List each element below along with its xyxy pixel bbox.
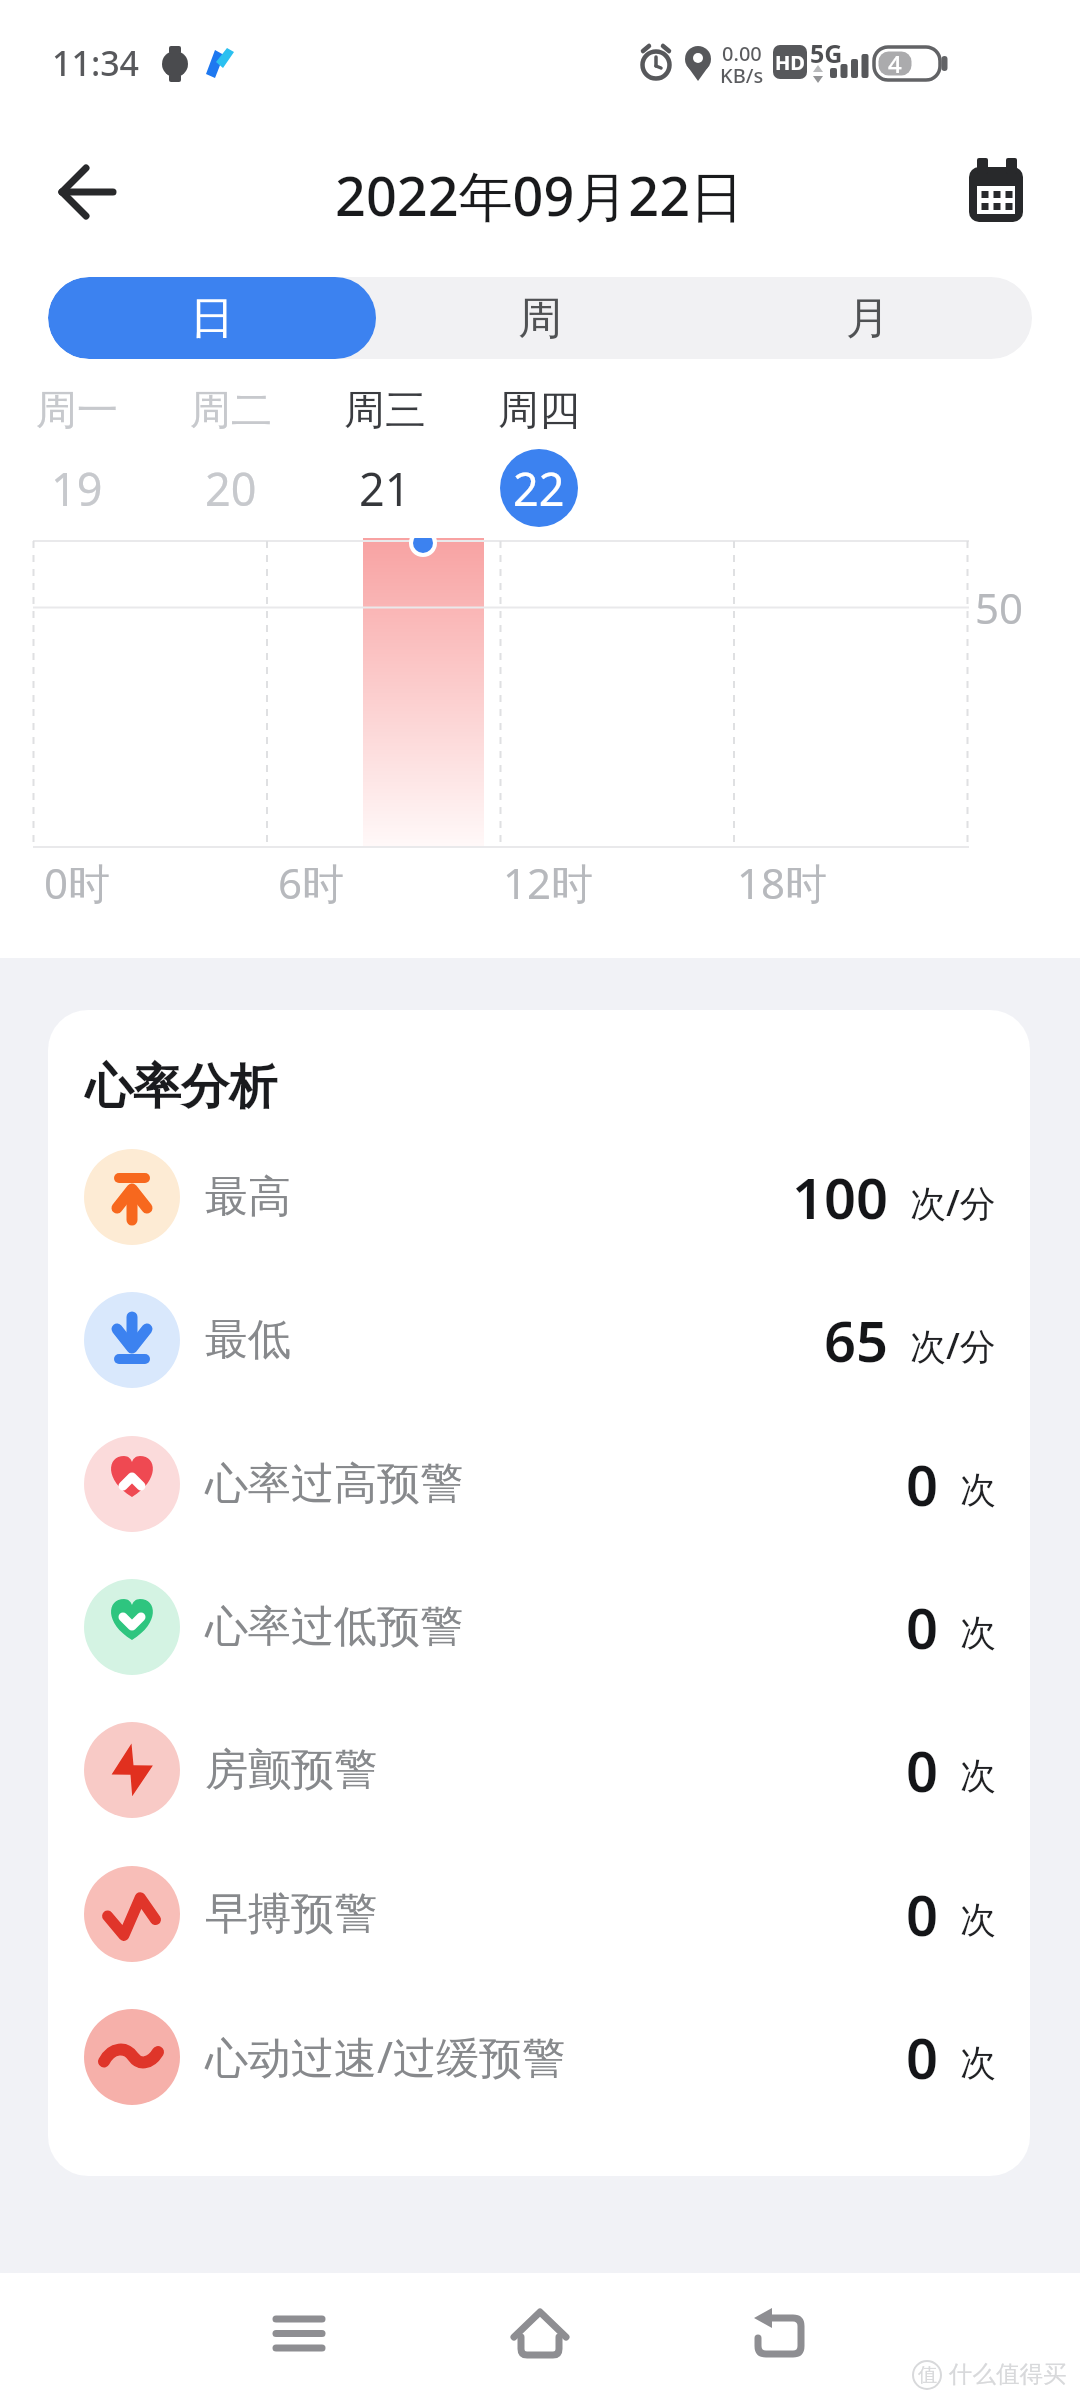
staticText: 心率分析 [85, 1057, 277, 1117]
staticText: 22 [513, 458, 565, 519]
staticText: 50 [975, 579, 1024, 636]
button[interactable]: 早搏预警 [84, 1842, 996, 1985]
staticText: 周 [518, 291, 562, 346]
button[interactable] [945, 140, 1045, 240]
button[interactable] [470, 2273, 610, 2400]
button[interactable]: 房颤预警 [84, 1698, 996, 1841]
staticText: 0时 [44, 854, 111, 911]
staticText: 心率过高预警 [205, 1457, 463, 1511]
button[interactable]: 21 [346, 449, 424, 527]
button[interactable]: 最低 [84, 1268, 996, 1411]
staticText: 0 [906, 2019, 939, 2095]
staticText: 周三 [344, 385, 426, 437]
staticText: 次/分 [910, 1178, 996, 1227]
staticText: 房颤预警 [205, 1743, 377, 1797]
button[interactable]: 周 [376, 277, 704, 359]
staticText: 65 [824, 1302, 889, 1378]
staticText: KB/s [720, 62, 764, 89]
staticText: 最低 [205, 1313, 291, 1367]
staticText: 周四 [498, 385, 580, 437]
staticText: 20 [205, 458, 257, 519]
button[interactable]: 心率过低预警 [84, 1555, 996, 1698]
staticText: HD [775, 49, 805, 76]
staticText: 0 [906, 1446, 939, 1522]
staticText: 心动过速/过缓预警 [205, 2027, 565, 2086]
button[interactable] [710, 2273, 850, 2400]
staticText: 0 [906, 1732, 939, 1808]
staticText: 100 [792, 1159, 889, 1235]
staticText: 周二 [190, 385, 272, 437]
button[interactable]: 最高 [84, 1125, 996, 1268]
staticText: 次 [960, 1467, 996, 1512]
staticText: 6时 [278, 854, 345, 911]
button[interactable] [35, 145, 140, 245]
staticText: 最高 [205, 1170, 291, 1224]
staticText: 日 [190, 291, 234, 346]
staticText: 0 [906, 1589, 939, 1665]
button[interactable]: 19 [38, 449, 116, 527]
staticText: 心率过低预警 [205, 1600, 463, 1654]
staticText: 什么值得买 [949, 2359, 1067, 2389]
staticText: 5G [810, 36, 843, 70]
staticText: 次 [960, 2040, 996, 2085]
staticText: 21 [359, 458, 411, 519]
button[interactable]: 心动过速/过缓预警 [84, 1985, 996, 2128]
staticText: 19 [51, 458, 103, 519]
staticText: 12时 [503, 854, 594, 911]
button[interactable]: 20 [192, 449, 270, 527]
staticText: 4 [888, 47, 902, 80]
staticText: 早搏预警 [205, 1887, 377, 1941]
staticText: 次/分 [910, 1321, 996, 1370]
staticText: 次 [960, 1753, 996, 1798]
staticText: 月 [846, 291, 890, 346]
button[interactable]: 月 [704, 277, 1032, 359]
staticText: 0.00 [722, 40, 762, 67]
staticText: 周一 [36, 385, 118, 437]
staticText: 次 [960, 1610, 996, 1655]
button[interactable]: 22 [500, 449, 578, 527]
staticText: 11:34 [52, 40, 140, 86]
staticText: 18时 [737, 854, 828, 911]
button[interactable]: 日 [48, 277, 376, 359]
staticText: 值 [918, 2363, 937, 2387]
staticText: 2022年09月22日 [335, 158, 745, 232]
staticText: 0 [906, 1876, 939, 1952]
staticText: 次 [960, 1897, 996, 1942]
button[interactable]: 心率过高预警 [84, 1412, 996, 1555]
button[interactable] [230, 2273, 370, 2400]
